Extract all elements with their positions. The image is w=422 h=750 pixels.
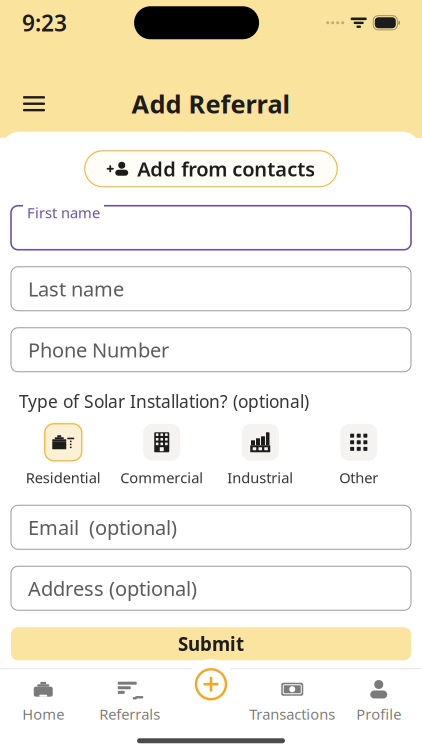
button[interactable]: Residential — [14, 424, 112, 487]
button[interactable]: Add — [186, 659, 236, 709]
staticText: Address (optional) — [28, 575, 197, 602]
button[interactable]: Last name — [11, 267, 411, 311]
staticText: Transactions — [249, 704, 335, 724]
button[interactable]: Profile — [335, 669, 422, 724]
button[interactable]: Address (optional) — [11, 566, 411, 610]
staticText: First name — [27, 203, 100, 222]
button[interactable]: Other — [309, 424, 408, 487]
button[interactable]: Email (optional) — [11, 505, 411, 549]
staticText: Add Referral — [131, 87, 290, 120]
button[interactable]: Home — [0, 669, 86, 724]
staticText: Phone Number — [28, 336, 169, 363]
staticText: Home — [22, 704, 64, 724]
staticText: Residential — [26, 468, 101, 487]
staticText: Submit — [178, 631, 244, 656]
button[interactable]: Phone Number — [11, 328, 411, 372]
staticText: Industrial — [227, 468, 293, 487]
staticText: Type of Solar Installation? (optional) — [19, 390, 309, 413]
button[interactable]: Commercial — [112, 424, 211, 487]
staticText: Last name — [28, 275, 124, 302]
staticText: Other — [339, 468, 378, 487]
button[interactable]: Transactions — [249, 669, 335, 724]
staticText: Add from contacts — [137, 155, 315, 182]
button[interactable]: Add from contacts — [85, 151, 337, 187]
staticText: Referrals — [99, 704, 160, 724]
button[interactable]: First name — [11, 206, 411, 250]
staticText: Email (optional) — [28, 514, 177, 541]
staticText: Commercial — [120, 468, 203, 487]
button[interactable]: Submit — [11, 627, 411, 660]
staticText: Profile — [356, 704, 401, 724]
button[interactable]: Referrals — [86, 669, 173, 724]
staticText: 9:23 — [22, 8, 67, 38]
button[interactable]: Menu — [12, 82, 56, 126]
button[interactable]: Industrial — [211, 424, 309, 487]
